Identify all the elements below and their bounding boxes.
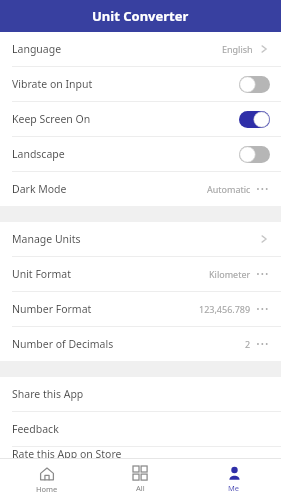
button[interactable]: Language: [0, 32, 281, 66]
button[interactable]: Vibrate on Input: [0, 67, 281, 101]
staticText: Unit Format: [12, 267, 72, 281]
staticText: Manage Units: [12, 232, 81, 246]
staticText: Rate this App on Store: [12, 447, 122, 458]
staticText: Number Format: [12, 302, 92, 316]
staticText: Unit Converter: [92, 7, 189, 25]
button[interactable]: Number of Decimals: [0, 327, 281, 361]
staticText: Automatic: [207, 183, 251, 195]
button[interactable]: Unit Format: [0, 257, 281, 291]
other: More options: [256, 268, 270, 280]
button[interactable]: Number Format: [0, 292, 281, 326]
staticText: Language: [12, 42, 62, 56]
other: On: [239, 111, 270, 128]
staticText: English: [222, 43, 253, 55]
staticText: 123,456.789: [199, 303, 251, 315]
button[interactable]: Rate this App on Store: [0, 447, 281, 458]
button[interactable]: Me: [187, 459, 281, 500]
button[interactable]: Keep Screen On: [0, 102, 281, 136]
other: Off: [239, 146, 270, 163]
other: More options: [256, 303, 270, 315]
button[interactable]: Share this App: [0, 377, 281, 411]
button[interactable]: Feedback: [0, 412, 281, 446]
button[interactable]: Landscape: [0, 137, 281, 171]
staticText: Me: [228, 483, 240, 493]
button[interactable]: Manage Units: [0, 222, 281, 256]
staticText: All: [136, 483, 145, 493]
staticText: Keep Screen On: [12, 112, 91, 126]
other: More options: [256, 183, 270, 195]
button[interactable]: Home: [0, 459, 93, 500]
staticText: Kilometer: [209, 268, 251, 280]
staticText: Number of Decimals: [12, 337, 114, 351]
button[interactable]: All: [93, 459, 187, 500]
staticText: Vibrate on Input: [12, 77, 93, 91]
staticText: Share this App: [12, 387, 84, 401]
other: Open: [258, 233, 270, 245]
other: Off: [239, 76, 270, 93]
staticText: Landscape: [12, 147, 65, 161]
button[interactable]: Dark Mode: [0, 172, 281, 206]
staticText: Home: [36, 484, 58, 494]
staticText: Dark Mode: [12, 182, 67, 196]
staticText: 2: [245, 338, 251, 350]
staticText: Feedback: [12, 422, 59, 436]
other: More options: [256, 338, 270, 350]
other: Open: [258, 43, 270, 55]
